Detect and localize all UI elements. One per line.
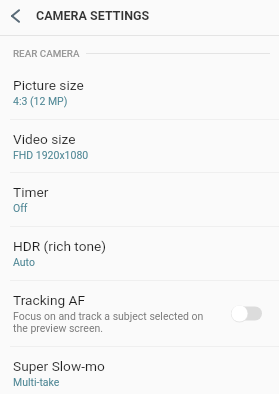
staticText: CAMERA SETTINGS — [36, 8, 150, 23]
button[interactable]: Video size — [0, 119, 279, 172]
button[interactable]: Timer — [0, 172, 279, 226]
staticText: Multi-take — [13, 376, 60, 388]
staticText: REAR CAMERA — [13, 48, 80, 59]
button[interactable]: Picture size — [0, 65, 279, 119]
staticText: Off — [13, 202, 28, 214]
staticText: Timer — [13, 184, 49, 200]
button[interactable]: HDR (rich tone) — [0, 226, 279, 280]
staticText: Focus on and track a subject selected on… — [13, 310, 204, 335]
staticText: Super Slow-mo — [13, 358, 105, 374]
button[interactable]: Tracking AF toggle — [230, 304, 263, 323]
button[interactable]: Tracking AF — [0, 280, 279, 346]
staticText: FHD 1920x1080 — [13, 149, 89, 161]
staticText: 4:3 (12 MP) — [13, 95, 68, 107]
button[interactable]: Super Slow-mo — [0, 346, 279, 394]
staticText: Video size — [13, 131, 76, 147]
staticText: Auto — [13, 256, 35, 268]
staticText: HDR (rich tone) — [13, 238, 107, 254]
staticText: Tracking AF — [13, 292, 86, 308]
button[interactable]: Back — [0, 0, 30, 33]
staticText: Picture size — [13, 77, 84, 93]
